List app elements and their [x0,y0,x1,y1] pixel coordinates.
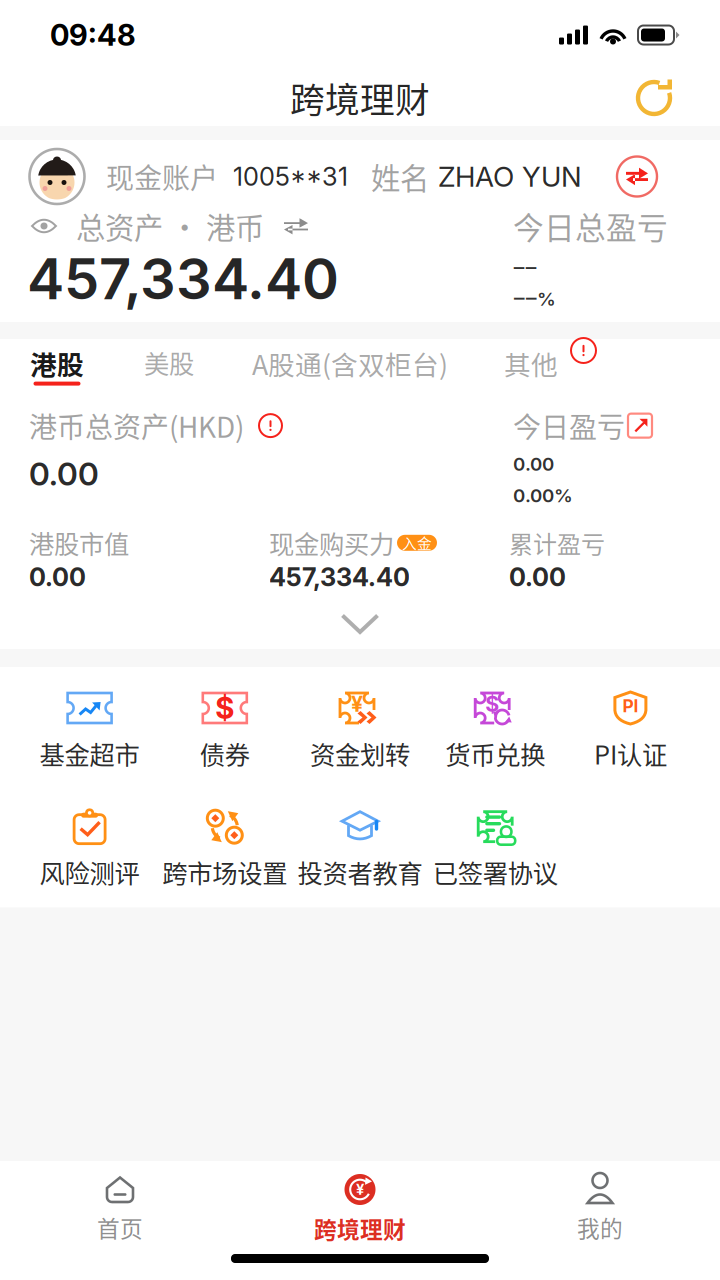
button[interactable]: 投资者教育 [292,809,428,890]
staticText: 其他 [504,344,558,383]
button[interactable]: Refresh [634,78,674,118]
staticText: ‒‒% [513,288,556,310]
staticText: 457,334.40 [269,562,410,592]
staticText: 跨境理财 [314,1212,406,1245]
staticText: PI [622,695,638,716]
button[interactable]: 我的 [480,1175,720,1244]
staticText: 09:48 [50,17,136,53]
button[interactable]: 基金超市 [22,690,157,772]
staticText: 港股市值 [29,524,129,561]
staticText: 1005**31 [233,161,348,192]
staticText: $ [485,691,499,717]
staticText: 美股 [144,344,194,381]
staticText: $ [215,690,234,726]
staticText: 港币总资产(HKD) [29,405,244,446]
staticText: 0.00% [513,484,573,507]
staticText: 累计盈亏 [509,525,605,560]
staticText: 入金 [402,532,432,553]
staticText: 基金超市 [40,735,140,772]
staticText: 0.00 [29,455,99,493]
staticText: 0.00 [509,562,566,592]
staticText: 我的 [577,1211,623,1244]
button[interactable]: 首页 [0,1175,240,1244]
button[interactable]: 已签署协议 [428,809,563,890]
button[interactable]: ¥ [292,690,428,772]
button[interactable]: Switch account [617,156,657,196]
staticText: 今日总盈亏 [513,204,668,248]
staticText: 0.00 [29,562,86,592]
staticText: 现金账户 [106,156,218,197]
staticText: PI认证 [594,735,667,772]
staticText: 首页 [97,1211,143,1244]
staticText: 457,334.40 [27,245,339,313]
staticText: 姓名 [371,155,429,198]
staticText: 债券 [200,735,250,772]
staticText: 已签署协议 [433,854,558,890]
staticText: 现金购买力 [269,524,394,561]
button[interactable]: 跨市场设置 [157,809,292,890]
staticText: 今日盈亏 [513,405,625,446]
staticText: 总资产 · 港币 [76,205,264,247]
staticText: 风险测评 [40,854,140,890]
staticText: 跨市场设置 [162,854,287,890]
staticText: 资金划转 [310,735,410,772]
staticText: A股通(含双柜台) [252,344,448,383]
staticText: ¥ [351,691,363,717]
staticText: 港股 [30,344,84,383]
staticText: 货币兑换 [445,735,545,772]
staticText: ZHAO YUN [438,160,582,193]
button[interactable]: 风险测评 [22,809,157,890]
staticText: 跨境理财 [290,73,430,123]
button[interactable]: Expand [0,605,720,643]
button[interactable]: $ [428,690,563,772]
button[interactable]: $ [157,690,292,772]
staticText: 投资者教育 [297,854,422,890]
button[interactable]: PI [563,690,698,772]
staticText: ‒‒ [513,256,537,279]
staticText: 0.00 [513,453,554,475]
button[interactable]: ¥ [240,1174,480,1245]
staticText: ¥ [356,1181,364,1198]
